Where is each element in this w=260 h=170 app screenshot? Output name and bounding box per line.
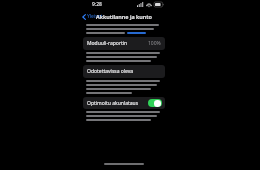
button[interactable]: Moduuli-raportin — [83, 37, 165, 50]
button[interactable]: Optimoitu akunlataus käytössä — [148, 99, 162, 107]
staticText: Odotettavissa oleva — [87, 68, 134, 75]
staticText: 100% — [148, 40, 161, 47]
button[interactable]: Lisätietoja — [127, 32, 146, 34]
button[interactable]: Yleiset — [78, 12, 107, 21]
staticText: Akkutilanne ja kunto — [96, 13, 152, 20]
staticText: Moduuli-raportin — [87, 40, 128, 47]
button[interactable]: Odotettavissa oleva — [83, 65, 165, 78]
staticText: Optimoitu akunlataus — [87, 100, 139, 107]
button[interactable]: Optimoitu akunlataus — [83, 97, 165, 109]
staticText: Yleiset — [87, 13, 103, 20]
staticText: 9:28 — [92, 1, 102, 8]
